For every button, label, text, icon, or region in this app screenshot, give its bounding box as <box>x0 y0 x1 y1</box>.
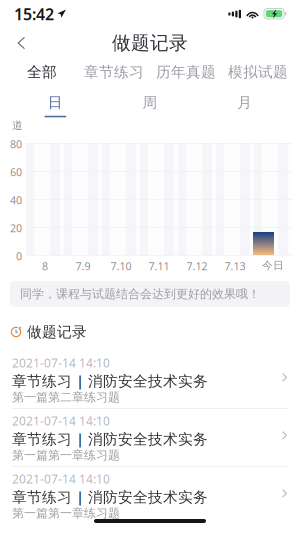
staticText: 第一篇第二章练习题 <box>12 390 120 405</box>
button[interactable]: 日 <box>8 89 103 117</box>
staticText: 60 <box>10 165 22 179</box>
button[interactable]: 2021-07-14 14:10 <box>0 468 300 526</box>
staticText: 7.12 <box>186 259 207 273</box>
staticText: 40 <box>10 193 22 207</box>
button[interactable]: 月 <box>197 89 292 117</box>
staticText: 80 <box>10 137 22 151</box>
button[interactable]: 模拟试题 <box>222 58 294 86</box>
staticText: 7.10 <box>110 259 131 273</box>
button[interactable]: 历年真题 <box>150 58 222 86</box>
staticText: 2021-07-14 14:10 <box>12 355 110 371</box>
button[interactable]: 章节练习 <box>78 58 150 86</box>
staticText: 20 <box>10 221 22 235</box>
button[interactable]: 2021-07-14 14:10 <box>0 352 300 410</box>
staticText: 0 <box>16 249 22 263</box>
staticText: 第一篇第一章练习题 <box>12 506 120 521</box>
button[interactable]: 全部 <box>6 58 78 86</box>
staticText: 月 <box>237 94 252 112</box>
staticText: 周 <box>142 94 157 112</box>
staticText: 7.13 <box>224 259 245 273</box>
staticText: 模拟试题 <box>228 63 288 81</box>
staticText: 同学，课程与试题结合会达到更好的效果哦！ <box>20 287 260 301</box>
staticText: 7.11 <box>148 259 169 273</box>
staticText: 第一篇第一章练习题 <box>12 448 120 463</box>
staticText: 2021-07-14 14:10 <box>12 413 110 429</box>
staticText: 今日 <box>262 259 284 272</box>
staticText: 章节练习 | 消防安全技术实务 <box>12 371 208 390</box>
staticText: 历年真题 <box>156 63 216 81</box>
staticText: 8 <box>42 259 48 273</box>
staticText: 章节练习 | 消防安全技术实务 <box>12 487 208 506</box>
staticText: 道 <box>12 119 23 132</box>
staticText: 做题记录 <box>27 323 87 341</box>
staticText: 章节练习 <box>84 63 144 81</box>
button[interactable]: 返回 <box>0 28 40 57</box>
button[interactable]: 周 <box>103 89 197 117</box>
staticText: 做题记录 <box>112 31 188 54</box>
button[interactable]: 2021-07-14 14:10 <box>0 410 300 468</box>
staticText: 7.9 <box>75 259 90 273</box>
staticText: 15:42 <box>14 3 54 25</box>
staticText: 日 <box>48 94 63 112</box>
staticText: 2021-07-14 14:10 <box>12 471 110 487</box>
staticText: 全部 <box>27 63 57 81</box>
staticText: 章节练习 | 消防安全技术实务 <box>12 429 208 448</box>
